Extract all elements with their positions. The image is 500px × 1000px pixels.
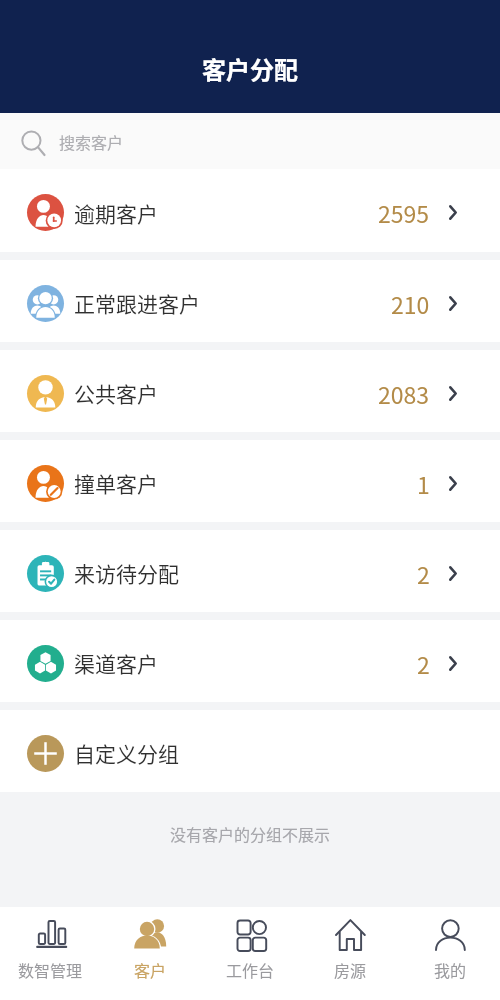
staticText: 没有客户的分组不展示 <box>170 822 331 845</box>
button[interactable]: 渠道客户 <box>0 620 500 702</box>
staticText: 房源 <box>334 958 367 981</box>
staticText: 来访待分配 <box>74 558 179 588</box>
button[interactable]: 工作台 <box>200 907 300 1000</box>
staticText: 正常跟进客户 <box>74 288 200 318</box>
button[interactable]: 逾期客户 <box>0 169 500 252</box>
staticText: 2 <box>417 647 430 680</box>
button[interactable]: 自定义分组 <box>0 710 500 792</box>
staticText: 210 <box>391 287 430 320</box>
button[interactable]: 公共客户 <box>0 350 500 432</box>
staticText: 公共客户 <box>74 378 158 408</box>
staticText: 客户分配 <box>202 51 298 86</box>
staticText: 自定义分组 <box>74 738 179 768</box>
staticText: 工作台 <box>226 958 275 981</box>
staticText: 2 <box>417 557 430 590</box>
staticText: 1 <box>417 467 430 500</box>
staticText: 撞单客户 <box>74 468 158 498</box>
staticText: 2595 <box>378 196 430 229</box>
staticText: 客户 <box>134 958 167 981</box>
button[interactable]: 房源 <box>300 907 400 1000</box>
staticText: 逾期客户 <box>74 198 158 228</box>
staticText: 我的 <box>434 958 467 981</box>
button[interactable]: 我的 <box>400 907 500 1000</box>
button[interactable]: 来访待分配 <box>0 530 500 612</box>
button[interactable]: 撞单客户 <box>0 440 500 522</box>
staticText: 渠道客户 <box>74 648 158 678</box>
button[interactable]: 数智管理 <box>0 907 100 1000</box>
button[interactable]: 搜索客户 <box>0 113 500 169</box>
staticText: 2083 <box>378 377 430 410</box>
staticText: 搜索客户 <box>59 130 124 153</box>
button[interactable]: 正常跟进客户 <box>0 260 500 342</box>
button[interactable]: 客户 <box>100 907 200 1000</box>
staticText: 数智管理 <box>18 958 83 981</box>
